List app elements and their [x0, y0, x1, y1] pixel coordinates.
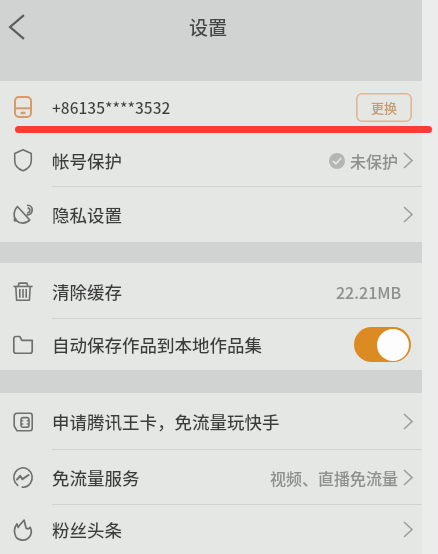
- button[interactable]: 免流量服务: [0, 450, 422, 505]
- staticText: 更换: [371, 98, 398, 117]
- button[interactable]: [354, 327, 411, 362]
- staticText: 22.21MB: [336, 280, 402, 303]
- staticText: 免流量服务: [52, 465, 140, 490]
- button[interactable]: 申请腾讯王卡，免流量玩快手: [0, 393, 422, 450]
- staticText: 粉丝头条: [52, 517, 122, 542]
- button[interactable]: Back: [0, 3, 42, 51]
- staticText: 帐号保护: [52, 148, 122, 173]
- button[interactable]: 清除缓存: [0, 263, 422, 319]
- staticText: 清除缓存: [52, 279, 122, 304]
- button[interactable]: 隐私设置: [0, 187, 422, 242]
- staticText: 隐私设置: [52, 202, 122, 227]
- button[interactable]: 帐号保护: [0, 133, 422, 187]
- staticText: 视频、直播免流量: [270, 466, 399, 489]
- staticText: +86135****3532: [52, 96, 171, 118]
- staticText: 设置: [189, 13, 228, 41]
- button[interactable]: 自动保存作品到本地作品集: [0, 319, 422, 370]
- staticText: 自动保存作品到本地作品集: [52, 332, 262, 357]
- staticText: 申请腾讯王卡，免流量玩快手: [52, 409, 280, 434]
- button[interactable]: 更换: [356, 93, 412, 122]
- staticText: 未保护: [350, 149, 399, 172]
- button[interactable]: +86135****3532: [0, 81, 422, 133]
- button[interactable]: 粉丝头条: [0, 505, 422, 554]
